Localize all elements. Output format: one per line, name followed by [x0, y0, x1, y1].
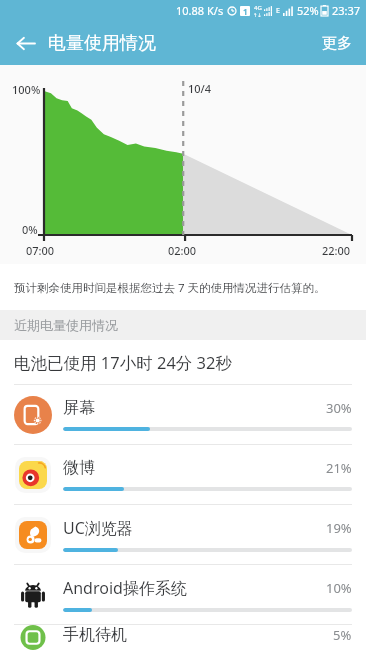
staticText: 4G	[254, 4, 262, 12]
staticText: 07:00	[26, 243, 55, 258]
button[interactable]: UC浏览器	[0, 505, 366, 564]
staticText: 21%	[326, 459, 352, 477]
staticText: 0%	[22, 222, 38, 237]
staticText: 电池已使用 17小时 24分 32秒	[14, 351, 232, 374]
staticText: 30%	[326, 399, 352, 417]
button[interactable]: Android操作系统	[0, 565, 366, 624]
staticText: UC浏览器	[63, 517, 326, 539]
staticText: 10%	[326, 579, 352, 597]
staticText: 微博	[63, 458, 326, 478]
staticText: 近期电量使用情况	[14, 317, 118, 333]
button[interactable]: 手机待机	[0, 625, 366, 650]
staticText: ↑↓	[253, 12, 262, 18]
staticText: 10/4	[188, 81, 212, 96]
staticText: 10.88 K/s	[176, 3, 224, 18]
staticText: 手机待机	[63, 625, 333, 645]
staticText: Android操作系统	[63, 577, 326, 599]
staticText: 52%	[297, 3, 319, 18]
staticText: 02:00	[168, 243, 197, 258]
staticText: E	[276, 6, 280, 16]
staticText: 电量使用情况	[48, 32, 156, 55]
button[interactable]: 屏幕	[0, 385, 366, 444]
staticText: 22:00	[322, 243, 351, 258]
staticText: 100%	[12, 82, 41, 97]
button[interactable]: 返回	[8, 26, 42, 60]
staticText: 更多	[322, 34, 352, 53]
staticText: 5%	[333, 626, 352, 644]
staticText: 屏幕	[63, 398, 326, 418]
button[interactable]: 微博	[0, 445, 366, 504]
staticText: 23:37	[332, 3, 361, 18]
staticText: 预计剩余使用时间是根据您过去 7 天的使用情况进行估算的。	[14, 280, 326, 296]
button[interactable]: 更多	[308, 24, 366, 63]
staticText: 1	[243, 6, 248, 16]
staticText: 19%	[326, 519, 352, 537]
